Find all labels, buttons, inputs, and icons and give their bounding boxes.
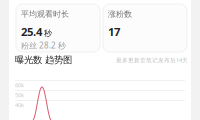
staticText: 最多更新至笔记发布后14天 [116, 56, 188, 64]
staticText: 17 [108, 24, 120, 39]
staticText: 25.4 [21, 24, 42, 39]
staticText: 40k [15, 101, 24, 109]
staticText: 粉丝 28.2 秒 [21, 40, 66, 51]
staticText: 曝光数 趋势图 [15, 54, 72, 66]
button[interactable]: 平均观看时长 [16, 4, 100, 52]
staticText: 60k [15, 81, 24, 89]
staticText: 秒 [44, 28, 52, 38]
button[interactable]: 涨粉数 [103, 4, 187, 52]
staticText: 平均观看时长 [21, 9, 69, 19]
staticText: 涨粉数 [108, 9, 132, 19]
staticText: 50k [15, 91, 24, 99]
